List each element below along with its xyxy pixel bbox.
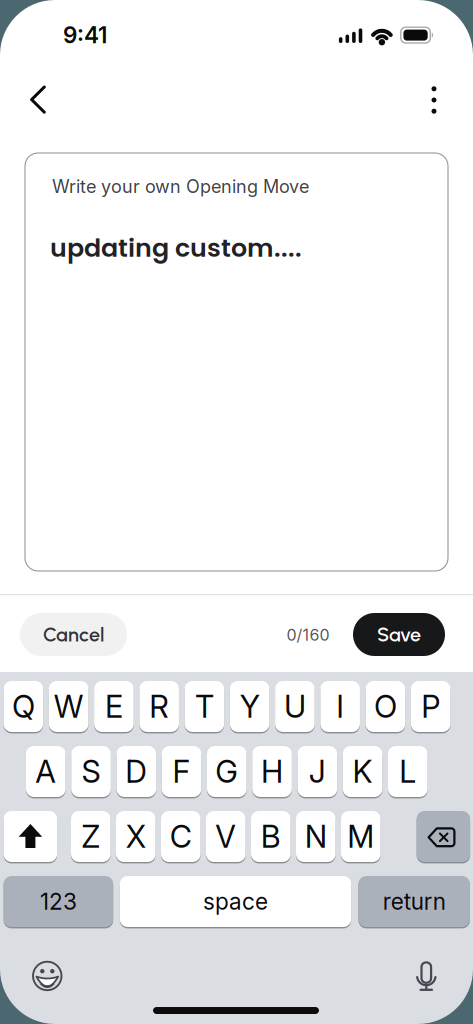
staticText: N bbox=[305, 818, 327, 855]
staticText: X bbox=[126, 818, 146, 855]
staticText: R bbox=[149, 688, 169, 725]
staticText: F bbox=[173, 753, 191, 790]
staticText: A bbox=[35, 753, 56, 790]
staticText: W bbox=[54, 688, 84, 725]
staticText: M bbox=[347, 818, 374, 855]
staticText: space bbox=[203, 888, 268, 915]
staticText: K bbox=[353, 753, 373, 790]
staticText: return bbox=[383, 888, 446, 915]
staticText: Write your own Opening Move bbox=[52, 175, 309, 197]
staticText: S bbox=[81, 753, 100, 790]
staticText: updating custom.... bbox=[50, 230, 302, 266]
staticText: G bbox=[215, 753, 238, 790]
staticText: H bbox=[261, 753, 283, 790]
staticText: O bbox=[374, 688, 397, 725]
staticText: P bbox=[421, 688, 440, 725]
staticText: Q bbox=[12, 688, 35, 725]
staticText: B bbox=[261, 818, 281, 855]
staticText: Save bbox=[377, 623, 421, 646]
staticText: L bbox=[399, 753, 416, 790]
staticText: Cancel bbox=[43, 623, 104, 646]
staticText: V bbox=[215, 818, 236, 855]
staticText: T bbox=[195, 688, 214, 725]
staticText: J bbox=[309, 753, 326, 790]
staticText: E bbox=[105, 688, 123, 725]
staticText: U bbox=[284, 688, 306, 725]
staticText: Z bbox=[81, 818, 100, 855]
staticText: I bbox=[336, 688, 344, 725]
staticText: 123 bbox=[40, 888, 77, 915]
staticText: D bbox=[125, 753, 147, 790]
staticText: 9:41 bbox=[63, 21, 107, 49]
staticText: C bbox=[170, 818, 192, 855]
staticText: 0/160 bbox=[286, 625, 329, 645]
staticText: Y bbox=[240, 688, 260, 725]
